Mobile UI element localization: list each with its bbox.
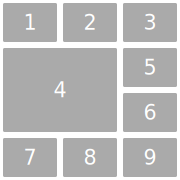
button[interactable]: 8 <box>63 138 117 177</box>
staticText: 1 <box>23 10 36 35</box>
staticText: 4 <box>53 78 66 102</box>
staticText: 8 <box>83 145 96 170</box>
button[interactable]: 2 <box>63 3 117 42</box>
button[interactable]: 4 <box>3 48 117 132</box>
staticText: 2 <box>83 10 96 35</box>
staticText: 5 <box>143 55 156 80</box>
button[interactable]: 6 <box>123 93 177 132</box>
staticText: 7 <box>23 145 36 170</box>
staticText: 6 <box>143 100 156 125</box>
staticText: 9 <box>143 145 156 170</box>
button[interactable]: 3 <box>123 3 177 42</box>
button[interactable]: 1 <box>3 3 57 42</box>
button[interactable]: 5 <box>123 48 177 87</box>
staticText: 3 <box>143 10 156 35</box>
button[interactable]: 9 <box>123 138 177 177</box>
button[interactable]: 7 <box>3 138 57 177</box>
